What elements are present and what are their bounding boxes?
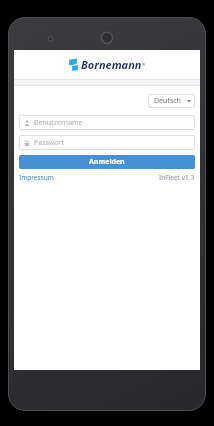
button[interactable]: Anmelden bbox=[19, 155, 195, 169]
staticText: Benutzername bbox=[34, 118, 83, 128]
staticText: Anmelden bbox=[89, 157, 125, 167]
button[interactable]: Password bbox=[19, 135, 195, 150]
staticText: InFleet v1.3 bbox=[159, 173, 195, 182]
staticText: Bornemann bbox=[81, 57, 142, 72]
staticText: Passwort bbox=[34, 138, 65, 148]
button[interactable]: Impressum bbox=[19, 173, 54, 182]
staticText: Deutsch bbox=[154, 96, 181, 106]
other: User bbox=[24, 120, 30, 126]
button[interactable]: User bbox=[19, 115, 195, 130]
staticText: Impressum bbox=[19, 173, 54, 182]
button[interactable]: Deutsch bbox=[148, 94, 195, 108]
other: Password bbox=[24, 140, 30, 146]
staticText: ® bbox=[142, 62, 146, 67]
